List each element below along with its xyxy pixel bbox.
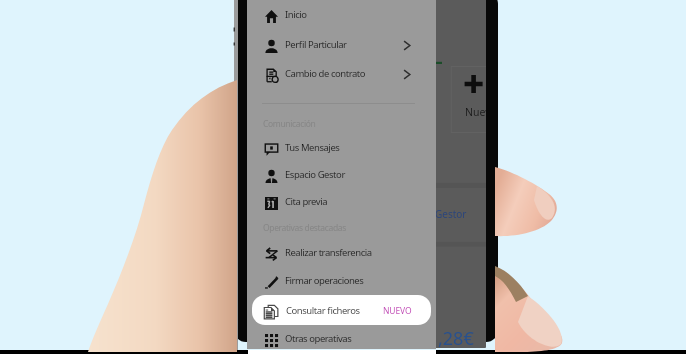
staticText: Cambio de contrato xyxy=(285,67,366,80)
staticText: Gestor xyxy=(435,207,467,221)
staticText: Nuev xyxy=(465,105,486,119)
button[interactable]: Cambio de contrato xyxy=(247,63,436,87)
staticText: Tus Mensajes xyxy=(285,141,340,154)
staticText: Operativas destacadas xyxy=(263,222,346,234)
staticText: ,28€ xyxy=(438,326,474,348)
button[interactable]: Inicio xyxy=(247,4,436,28)
staticText: Realizar transferencia xyxy=(285,246,372,259)
staticText: Inicio xyxy=(285,8,307,21)
staticText: Comunicación xyxy=(263,118,316,130)
staticText: Otras operativas xyxy=(285,332,352,345)
button[interactable]: Perfil Particular xyxy=(247,34,436,58)
staticText: NUEVO xyxy=(383,305,412,317)
staticText: Cita previa xyxy=(285,195,328,208)
button[interactable]: Realizar transferencia xyxy=(247,242,436,266)
staticText: Firmar operaciones xyxy=(285,274,364,287)
button[interactable]: Espacio Gestor xyxy=(247,164,436,188)
staticText: Perfil Particular xyxy=(285,38,347,51)
button[interactable]: Cita previa xyxy=(247,191,436,215)
button[interactable]: Firmar operaciones xyxy=(247,270,436,294)
button[interactable]: Tus Mensajes xyxy=(247,137,436,161)
staticText: Consultar ficheros xyxy=(286,304,360,317)
button[interactable]: Consultar ficheros xyxy=(252,295,431,325)
staticText: Espacio Gestor xyxy=(285,168,345,181)
button[interactable]: Otras operativas xyxy=(247,328,436,352)
